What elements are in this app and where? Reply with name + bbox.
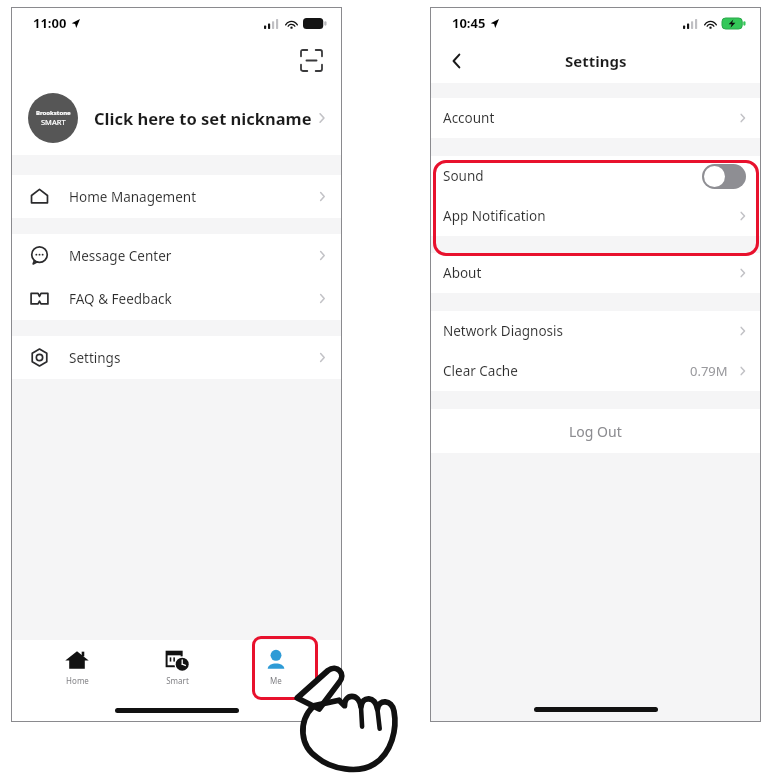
- staticText: SMART: [41, 117, 66, 127]
- button[interactable]: Brookstone: [11, 81, 342, 155]
- button[interactable]: About: [430, 253, 761, 293]
- button[interactable]: Home Management: [11, 175, 342, 218]
- staticText: FAQ & Feedback: [69, 290, 172, 308]
- staticText: Network Diagnosis: [443, 322, 563, 340]
- staticText: Clear Cache: [443, 362, 518, 380]
- button[interactable]: FAQ & Feedback: [11, 277, 342, 320]
- button[interactable]: App Notification: [430, 196, 761, 236]
- staticText: About: [443, 264, 482, 282]
- staticText: App Notification: [443, 207, 546, 225]
- button[interactable]: Back: [438, 44, 472, 78]
- staticText: Settings: [69, 349, 121, 367]
- staticText: Brookstone: [36, 109, 71, 117]
- button[interactable]: Log Out: [430, 409, 761, 453]
- button[interactable]: Scan QR code: [294, 43, 328, 77]
- button[interactable]: Clear Cache: [430, 351, 761, 391]
- button[interactable]: Home: [44, 640, 110, 698]
- button[interactable]: Smart: [144, 640, 210, 698]
- button[interactable]: Sound: [430, 156, 761, 196]
- button[interactable]: Account: [430, 98, 761, 138]
- button[interactable]: Sound toggle, off: [702, 164, 746, 189]
- staticText: Account: [443, 109, 495, 127]
- staticText: Message Center: [69, 247, 172, 265]
- staticText: Home: [66, 675, 89, 686]
- staticText: Sound: [443, 167, 484, 185]
- staticText: 11:00: [33, 14, 67, 32]
- staticText: Log Out: [569, 422, 622, 441]
- button[interactable]: Settings: [11, 336, 342, 379]
- staticText: Click here to set nickname: [94, 107, 312, 129]
- staticText: 0.79M: [690, 362, 728, 380]
- staticText: 10:45: [452, 14, 486, 32]
- staticText: Home Management: [69, 188, 197, 206]
- button[interactable]: Message Center: [11, 234, 342, 277]
- staticText: Settings: [565, 51, 627, 71]
- button[interactable]: Me: [243, 640, 309, 698]
- staticText: Smart: [166, 675, 189, 686]
- button[interactable]: Network Diagnosis: [430, 311, 761, 351]
- staticText: Me: [270, 675, 282, 686]
